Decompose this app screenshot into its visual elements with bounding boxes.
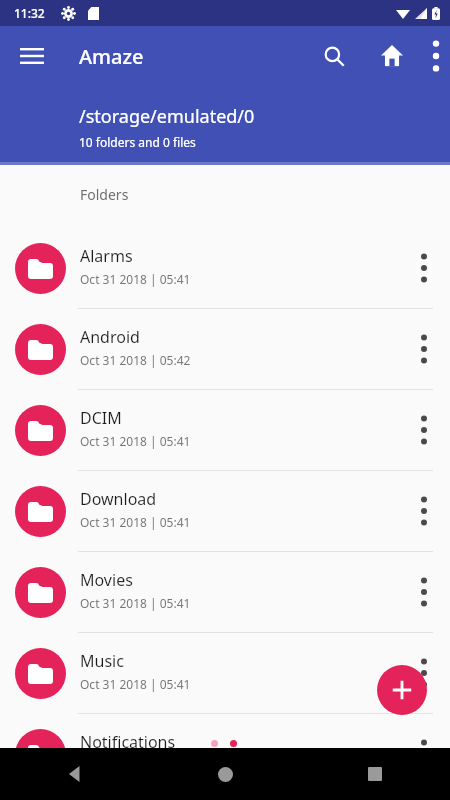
- button[interactable]: More options for Download: [404, 491, 444, 531]
- staticText: Download: [80, 488, 157, 510]
- button[interactable]: More options: [414, 34, 450, 78]
- staticText: Oct 31 2018 | 05:42: [80, 352, 191, 368]
- staticText: Oct 31 2018 | 05:41: [80, 595, 191, 611]
- button[interactable]: Alarms: [0, 228, 450, 308]
- staticText: Oct 31 2018 | 05:41: [80, 433, 191, 449]
- staticText: Amaze: [79, 43, 144, 70]
- staticText: Oct 31 2018 | 05:41: [80, 514, 191, 530]
- button[interactable]: Recent apps: [300, 748, 450, 800]
- button[interactable]: Notifications: [0, 714, 450, 794]
- button[interactable]: Home: [368, 32, 416, 80]
- staticText: Oct 31 2018 | 05:41: [80, 676, 191, 692]
- staticText: Music: [80, 650, 124, 672]
- staticText: 10 folders and 0 files: [79, 134, 196, 150]
- button[interactable]: Add: [377, 665, 427, 715]
- button[interactable]: Open navigation drawer: [8, 32, 56, 80]
- button[interactable]: Back: [0, 748, 150, 800]
- button[interactable]: Movies: [0, 552, 450, 632]
- staticText: /storage/emulated/0: [79, 104, 255, 129]
- button[interactable]: More options for Music: [404, 653, 444, 693]
- staticText: Notifications: [80, 731, 176, 753]
- staticText: DCIM: [80, 407, 122, 429]
- button[interactable]: Home: [150, 748, 300, 800]
- button[interactable]: DCIM: [0, 390, 450, 470]
- staticText: Android: [80, 326, 140, 348]
- staticText: Movies: [80, 569, 133, 591]
- button[interactable]: Search: [310, 32, 358, 80]
- button[interactable]: Android: [0, 309, 450, 389]
- button[interactable]: More options for Android: [404, 329, 444, 369]
- staticText: Folders: [80, 185, 129, 204]
- button[interactable]: More options for Notifications: [404, 734, 444, 774]
- staticText: Alarms: [80, 245, 133, 267]
- button[interactable]: More options for DCIM: [404, 410, 444, 450]
- button[interactable]: Music: [0, 633, 450, 713]
- button[interactable]: More options for Alarms: [404, 248, 444, 288]
- button[interactable]: More options for Movies: [404, 572, 444, 612]
- button[interactable]: Download: [0, 471, 450, 551]
- staticText: Oct 31 2018 | 05:41: [80, 271, 191, 287]
- staticText: 11:32: [14, 5, 45, 21]
